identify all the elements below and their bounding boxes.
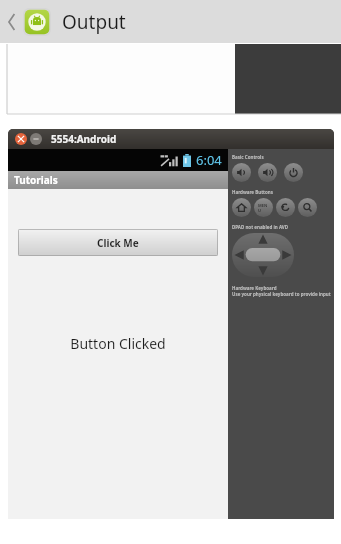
staticText: DPAD not enabled in AVD	[232, 224, 289, 230]
button[interactable]: Click Me	[18, 229, 218, 256]
staticText: Use your physical keyboard to provide in…	[232, 291, 331, 297]
staticText: 6:04	[196, 151, 222, 169]
staticText: Basic Controls	[232, 154, 264, 160]
staticText: Button Clicked	[70, 334, 166, 353]
button[interactable]: Menu	[254, 198, 273, 217]
staticText: MENU	[258, 203, 269, 213]
button[interactable]: Volume up	[258, 163, 277, 182]
button[interactable]: Back	[4, 7, 20, 37]
staticText: Click Me	[97, 236, 139, 250]
button[interactable]: Power	[284, 163, 303, 182]
button[interactable]: Volume down	[232, 163, 251, 182]
staticText: Tutorials	[14, 173, 58, 187]
button[interactable]: Back	[276, 198, 295, 217]
button[interactable]: Home	[232, 198, 251, 217]
staticText: Hardware Keyboard	[232, 285, 277, 291]
button[interactable]: Search	[298, 198, 317, 217]
staticText: Output	[62, 9, 126, 35]
button[interactable]: Minimize	[30, 133, 42, 145]
button[interactable]: D-pad	[232, 233, 294, 277]
button[interactable]: Close	[15, 133, 27, 145]
staticText: Hardware Buttons	[232, 189, 274, 195]
staticText: 5554:Android	[51, 132, 117, 146]
